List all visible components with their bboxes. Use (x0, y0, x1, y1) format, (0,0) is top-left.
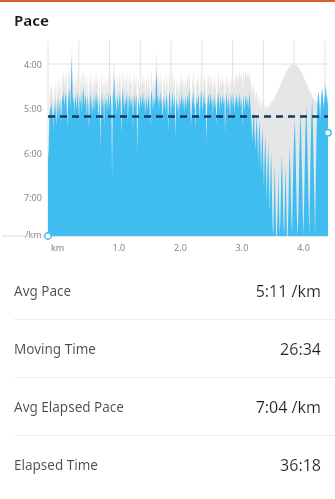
button[interactable]: Elapsed Time (0, 436, 335, 493)
staticText: 36:18 (280, 454, 321, 476)
staticText: 5:11 /km (255, 280, 321, 302)
staticText: 7:04 /km (255, 396, 321, 418)
staticText: Elapsed Time (14, 456, 98, 474)
button[interactable]: Avg Pace (0, 262, 335, 319)
staticText: 26:34 (280, 338, 321, 360)
button[interactable]: Moving Time (0, 320, 335, 377)
staticText: Avg Pace (14, 282, 72, 300)
staticText: Avg Elapsed Pace (14, 398, 124, 416)
staticText: Moving Time (14, 340, 96, 358)
button[interactable]: Avg Elapsed Pace (0, 378, 335, 435)
staticText: Pace (14, 10, 49, 30)
